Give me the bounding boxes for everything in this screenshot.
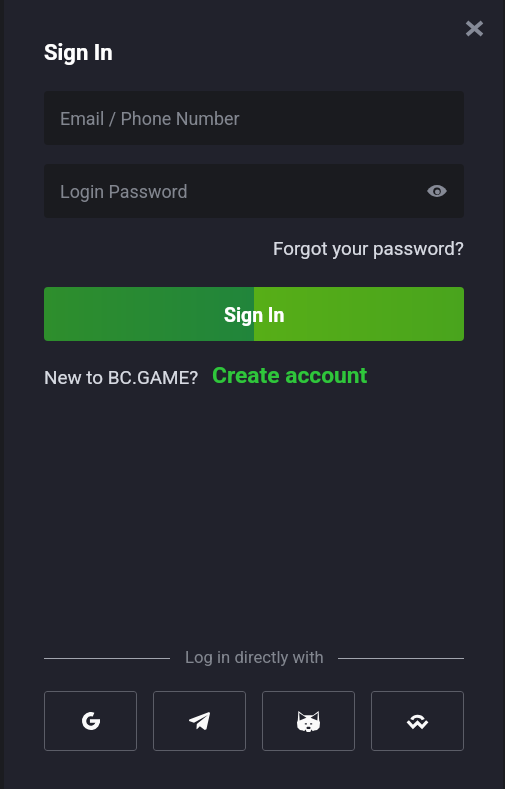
button[interactable]: Login Password — [44, 164, 464, 218]
button[interactable]: Forgot your password? — [273, 238, 464, 260]
button[interactable]: Create account — [212, 362, 368, 389]
staticText: Sign In — [44, 40, 113, 66]
button[interactable]: Sign in with Google — [44, 691, 137, 751]
staticText: Email / Phone Number — [60, 108, 240, 129]
staticText: New to BC.GAME? — [44, 366, 199, 388]
button[interactable]: Sign in with MetaMask — [262, 691, 355, 751]
button[interactable]: Sign in with Telegram — [153, 691, 246, 751]
staticText: Sign In — [224, 304, 285, 327]
button[interactable]: Sign In — [44, 287, 464, 341]
button[interactable]: Email / Phone Number — [44, 91, 464, 145]
button[interactable]: Close — [452, 6, 497, 51]
staticText: Log in directly with — [185, 648, 324, 668]
button[interactable]: Sign in with WalletConnect — [371, 691, 464, 751]
staticText: Create account — [212, 362, 368, 389]
button[interactable]: Show password — [421, 175, 453, 207]
staticText: Login Password — [60, 181, 188, 202]
